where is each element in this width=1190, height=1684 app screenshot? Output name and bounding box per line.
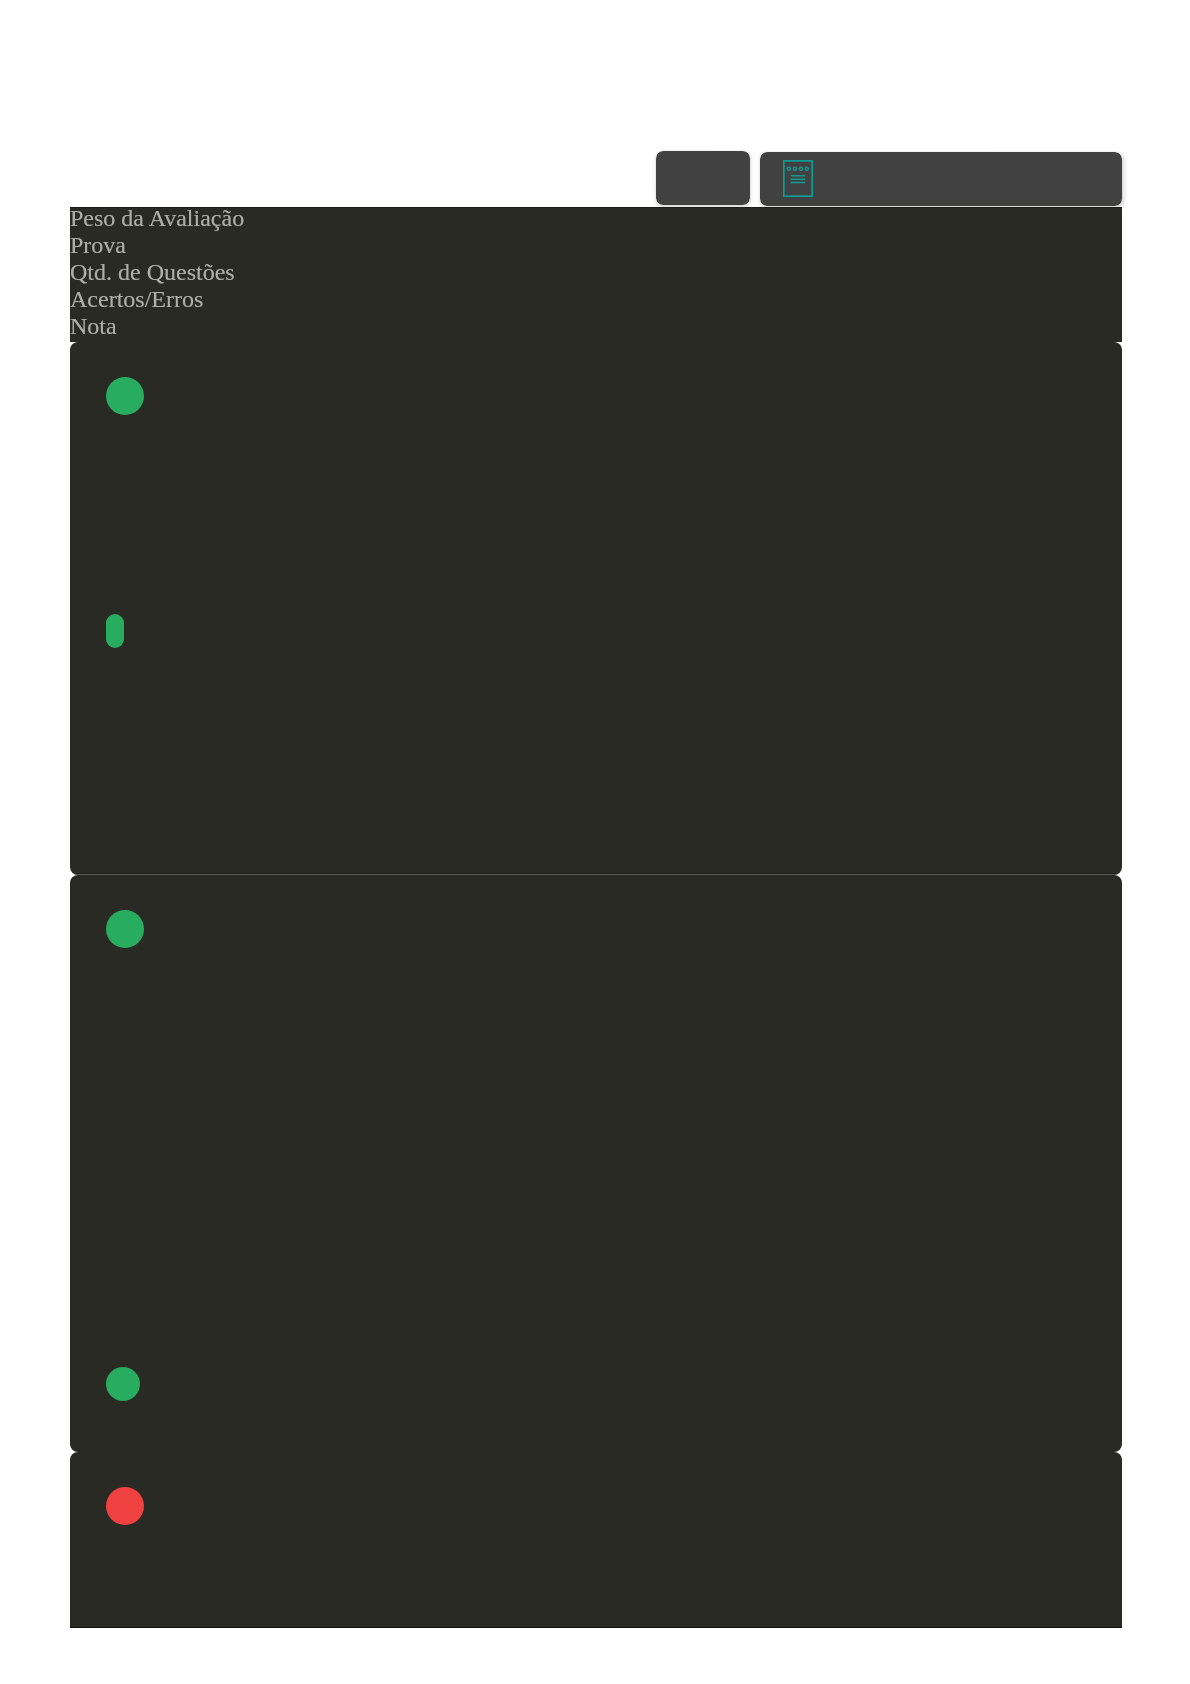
button[interactable]: Avaliação 1 bbox=[70, 342, 1122, 875]
staticText: Peso da Avaliação bbox=[70, 205, 245, 232]
button[interactable]: Notas bbox=[760, 152, 1122, 206]
button[interactable]: Avaliação 2 bbox=[70, 875, 1122, 1452]
staticText: Nota bbox=[70, 313, 117, 340]
staticText: Acertos/Erros bbox=[70, 286, 204, 313]
button[interactable]: Avaliação 3 bbox=[70, 1452, 1122, 1628]
button[interactable]: Filtrar bbox=[656, 151, 750, 205]
staticText: Prova bbox=[70, 232, 126, 259]
staticText: Qtd. de Questões bbox=[70, 259, 235, 286]
